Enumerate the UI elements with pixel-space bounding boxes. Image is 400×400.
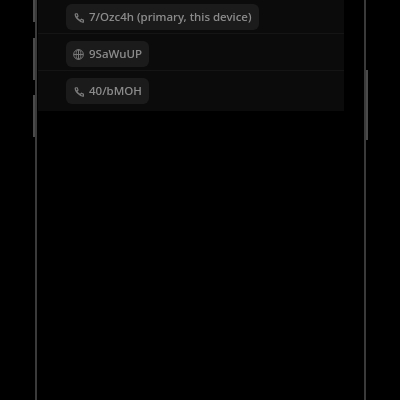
staticText: 9SaWuUP <box>89 46 142 62</box>
staticText: 7/Ozc4h (primary, this device) <box>89 9 252 25</box>
button[interactable]: 7/Ozc4h (primary, this device) <box>38 1 344 33</box>
button[interactable]: 9SaWuUP <box>38 38 344 70</box>
button[interactable]: 40/bMOH <box>38 75 344 107</box>
staticText: 40/bMOH <box>89 83 142 99</box>
